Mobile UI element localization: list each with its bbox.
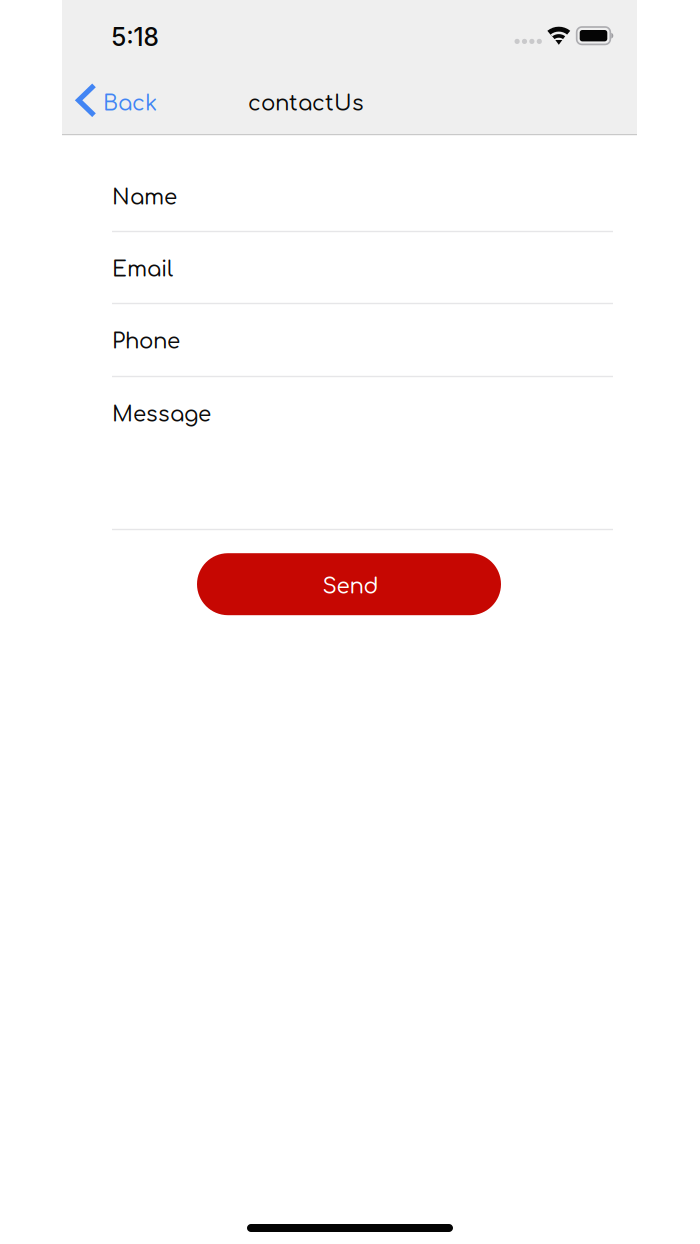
button[interactable]: Back xyxy=(62,72,169,130)
button[interactable]: Email xyxy=(112,232,613,304)
staticText: Email xyxy=(112,258,173,281)
staticText: contactUs xyxy=(248,92,364,115)
staticText: Send xyxy=(322,575,378,599)
button[interactable]: Name xyxy=(112,160,613,232)
staticText: Name xyxy=(112,186,177,209)
button[interactable]: Phone xyxy=(112,304,613,377)
staticText: Back xyxy=(103,92,157,115)
button[interactable]: Message xyxy=(112,377,613,530)
staticText: 5:18 xyxy=(111,22,158,52)
button[interactable]: Send xyxy=(197,553,501,615)
staticText: Message xyxy=(112,403,211,426)
staticText: Phone xyxy=(112,330,180,353)
